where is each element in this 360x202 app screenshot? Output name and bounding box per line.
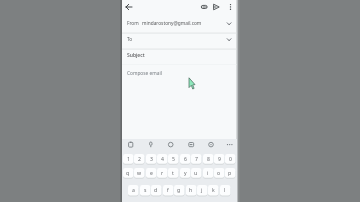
staticText: f — [167, 187, 169, 194]
button[interactable]: l — [220, 185, 230, 197]
button[interactable]: 2 — [134, 154, 144, 165]
button[interactable]: f — [163, 185, 173, 197]
staticText: s — [144, 187, 147, 194]
button[interactable] — [124, 1, 135, 13]
button[interactable]: p — [225, 168, 235, 179]
button[interactable]: g — [174, 185, 184, 197]
staticText: 3 — [150, 156, 153, 163]
staticText: k — [212, 187, 215, 194]
button[interactable]: From — [122, 16, 237, 33]
button[interactable]: t — [168, 168, 178, 179]
button[interactable]: k — [208, 185, 218, 197]
staticText: w — [137, 170, 142, 177]
staticText: 5 — [172, 156, 175, 163]
staticText: h — [189, 187, 193, 194]
staticText: 6 — [184, 156, 187, 163]
button[interactable]: 7 — [191, 154, 201, 165]
staticText: y — [184, 170, 187, 177]
staticText: t — [172, 170, 174, 177]
button[interactable]: w — [134, 168, 144, 179]
staticText: g — [177, 187, 181, 194]
button[interactable] — [227, 2, 234, 12]
staticText: j — [201, 187, 203, 194]
staticText: i — [207, 170, 209, 177]
button[interactable]: 5 — [168, 154, 178, 165]
staticText: e — [150, 170, 153, 177]
button[interactable]: i — [203, 168, 213, 179]
staticText: Subject — [127, 52, 145, 59]
staticText: 4 — [161, 156, 164, 163]
staticText: 0 — [229, 156, 232, 163]
button[interactable]: 6 — [180, 154, 190, 165]
button[interactable]: j — [197, 185, 207, 197]
button[interactable]: u — [191, 168, 201, 179]
staticText: o — [217, 170, 221, 177]
button[interactable]: To — [122, 33, 237, 49]
staticText: Compose email — [127, 70, 162, 77]
button[interactable] — [200, 2, 209, 12]
button[interactable]: o — [214, 168, 224, 179]
button[interactable]: Subject — [122, 49, 237, 65]
button[interactable]: 4 — [157, 154, 167, 165]
staticText: d — [154, 187, 158, 194]
staticText: From — [127, 20, 139, 27]
button[interactable]: 8 — [203, 154, 213, 165]
button[interactable]: a — [128, 185, 138, 197]
staticText: To — [127, 36, 133, 43]
button[interactable]: h — [186, 185, 196, 197]
staticText: a — [132, 187, 135, 194]
button[interactable]: d — [151, 185, 161, 197]
button[interactable]: y — [180, 168, 190, 179]
button[interactable]: 0 — [225, 154, 235, 165]
staticText: q — [126, 170, 130, 177]
staticText: l — [224, 187, 226, 194]
button[interactable]: Compose email — [122, 65, 237, 138]
staticText: 9 — [218, 156, 221, 163]
button[interactable]: 1 — [123, 154, 133, 165]
button[interactable]: 9 — [214, 154, 224, 165]
button[interactable]: 3 — [146, 154, 156, 165]
staticText: 8 — [207, 156, 210, 163]
staticText: p — [228, 170, 232, 177]
staticText: mindarostony@gmail.com — [142, 20, 202, 27]
staticText: r — [161, 170, 164, 177]
staticText: 7 — [195, 156, 198, 163]
staticText: 1 — [127, 156, 130, 163]
button[interactable]: e — [146, 168, 156, 179]
staticText: 2 — [138, 156, 141, 163]
button[interactable]: q — [123, 168, 133, 179]
button[interactable]: s — [140, 185, 150, 197]
staticText: u — [194, 170, 198, 177]
button[interactable]: r — [157, 168, 167, 179]
button[interactable] — [212, 2, 221, 12]
